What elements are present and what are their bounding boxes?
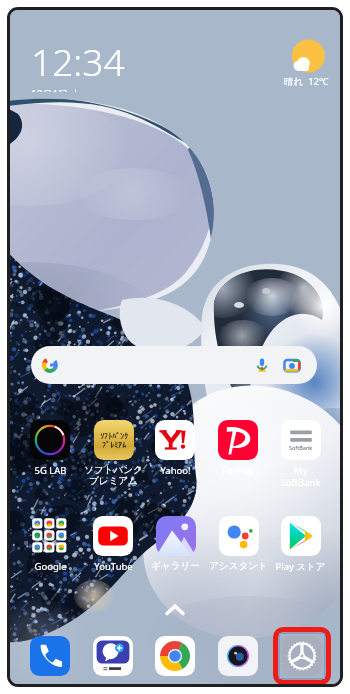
- other: Voice search: [253, 356, 271, 374]
- staticText: My SoftBank: [280, 464, 321, 487]
- button[interactable]: ギャラリー: [144, 511, 206, 583]
- button[interactable]: Google: [19, 511, 81, 583]
- button[interactable]: Phone: [19, 630, 81, 682]
- button[interactable]: 晴れ 12℃: [270, 38, 340, 94]
- button[interactable]: Yahoo!: [144, 415, 206, 487]
- button[interactable]: Play ストア: [269, 511, 331, 583]
- button[interactable]: SoftBank: [269, 415, 331, 487]
- button[interactable]: Voice search: [31, 346, 317, 384]
- button[interactable]: Open app drawer: [155, 595, 195, 625]
- staticText: 晴れ 12℃: [284, 75, 329, 88]
- button[interactable]: 12:34: [31, 36, 151, 92]
- staticText: 12:34: [31, 36, 125, 86]
- button[interactable]: アシスタント: [207, 511, 269, 583]
- staticText: Yahoo!: [160, 464, 191, 477]
- button[interactable]: Settings: [273, 627, 331, 684]
- staticText: Play ストア: [275, 560, 326, 573]
- button[interactable]: PayPay: [207, 415, 269, 487]
- staticText: ギャラリー: [151, 560, 200, 572]
- staticText: 12月1日 木: [31, 87, 81, 92]
- button[interactable]: YouTube: [82, 511, 144, 583]
- button[interactable]: SoftBank Mail: [82, 630, 144, 682]
- staticText: YouTube: [94, 560, 133, 573]
- other: Google Lens: [283, 356, 301, 374]
- staticText: SoftBank: [289, 444, 313, 451]
- staticText: Google: [34, 560, 67, 573]
- button[interactable]: Chrome: [144, 630, 206, 682]
- staticText: 5G LAB: [34, 464, 67, 477]
- button[interactable]: Camera: [207, 630, 269, 682]
- staticText: ソフトバンク プレミアム: [84, 464, 143, 487]
- staticText: ｿﾌﾄﾊﾞﾝｸ ﾌﾟﾚﾐｱﾑ: [100, 432, 128, 449]
- button[interactable]: ｿﾌﾄﾊﾞﾝｸ ﾌﾟﾚﾐｱﾑ: [82, 415, 144, 487]
- staticText: アシスタント: [209, 560, 268, 572]
- button[interactable]: 5G LAB: [19, 415, 81, 487]
